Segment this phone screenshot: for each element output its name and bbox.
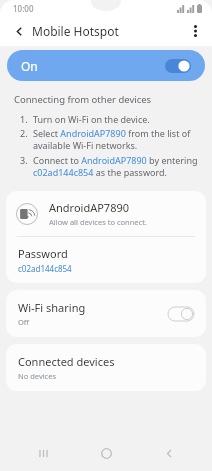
staticText: Connect to AndroidAP7890 by entering c02… xyxy=(33,154,198,179)
staticText: Turn on Wi-Fi on the device. xyxy=(33,113,150,125)
staticText: Off xyxy=(18,317,30,327)
staticText: 10:00 xyxy=(13,3,34,14)
staticText: Connected devices xyxy=(18,354,115,369)
staticText: c02ad144c854 xyxy=(18,263,72,274)
staticText: No devices xyxy=(18,371,57,381)
staticText: Password xyxy=(18,246,68,261)
button[interactable]: More options xyxy=(182,18,208,44)
staticText: Connecting from other devices xyxy=(14,93,152,106)
button[interactable]: Recents xyxy=(23,435,63,471)
staticText: Allow all devices to connect. xyxy=(49,217,147,227)
button[interactable]: Wi-Fi sharing xyxy=(6,290,206,337)
staticText: Mobile Hotspot xyxy=(32,23,119,39)
staticText: Select AndroidAP7890 from the list of av… xyxy=(33,127,198,152)
button[interactable]: Connected devices xyxy=(6,344,206,391)
staticText: 3. xyxy=(20,154,33,166)
staticText: 2. xyxy=(20,127,33,139)
button[interactable]: AndroidAP7890 xyxy=(6,191,206,236)
staticText: AndroidAP7890 xyxy=(49,200,130,215)
staticText: On xyxy=(21,58,38,74)
staticText: Wi-Fi sharing xyxy=(18,300,86,315)
button[interactable]: Password xyxy=(6,237,206,283)
button[interactable]: Home xyxy=(86,435,126,471)
button[interactable]: Back xyxy=(6,18,32,44)
button[interactable]: Back xyxy=(149,435,189,471)
button[interactable]: On xyxy=(7,50,205,81)
staticText: 1. xyxy=(20,113,33,125)
